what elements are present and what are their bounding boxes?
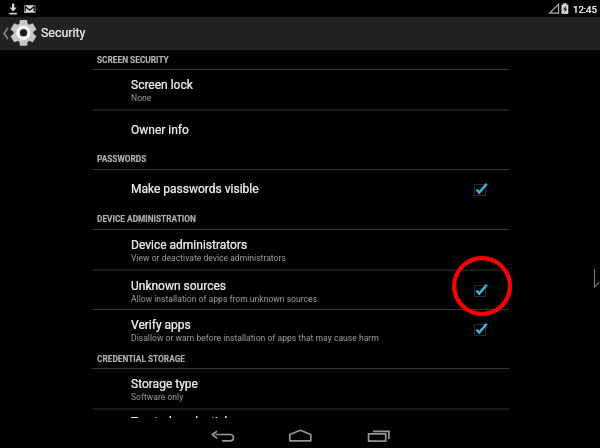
staticText: Verify apps — [131, 318, 191, 332]
staticText: Device administrators — [131, 238, 248, 252]
staticText: CREDENTIAL STORAGE — [97, 354, 185, 364]
button[interactable]: Enabled — [474, 182, 488, 196]
staticText: DEVICE ADMINISTRATION — [97, 214, 196, 224]
button[interactable]: Unknown sources — [0, 270, 600, 310]
staticText: Storage type — [131, 377, 198, 391]
button[interactable]: Trusted credentials — [0, 409, 600, 421]
staticText: PASSWORDS — [97, 154, 147, 164]
staticText: Screen lock — [131, 78, 193, 92]
staticText: Software only — [131, 392, 184, 402]
button[interactable]: Device administrators — [0, 229, 600, 270]
staticText: Disallow or warn before installation of … — [131, 333, 379, 343]
staticText: Make passwords visible — [131, 182, 259, 196]
button[interactable]: Verify apps — [0, 309, 600, 349]
staticText: 12:45 — [573, 4, 597, 15]
button[interactable]: Home — [280, 418, 320, 448]
staticText: Allow installation of apps from unknown … — [131, 294, 318, 304]
button[interactable]: Screen lock — [0, 69, 600, 110]
staticText: SCREEN SECURITY — [97, 55, 169, 65]
staticText: Owner info — [131, 123, 189, 137]
staticText: Unknown sources — [131, 279, 227, 293]
button[interactable]: Enabled — [474, 322, 488, 336]
button[interactable]: Back — [202, 418, 242, 448]
button[interactable]: Recent apps — [359, 418, 399, 448]
staticText: Trusted credentials — [131, 415, 234, 427]
button[interactable]: Owner info — [0, 110, 600, 150]
staticText: None — [131, 93, 152, 103]
button[interactable]: Enabled — [474, 283, 488, 297]
button[interactable]: Security, navigate up — [0, 17, 600, 50]
staticText: Security — [41, 25, 86, 40]
button[interactable]: Make passwords visible — [0, 169, 600, 209]
button[interactable]: Storage type — [0, 368, 600, 409]
staticText: View or deactivate device administrators — [131, 253, 286, 263]
